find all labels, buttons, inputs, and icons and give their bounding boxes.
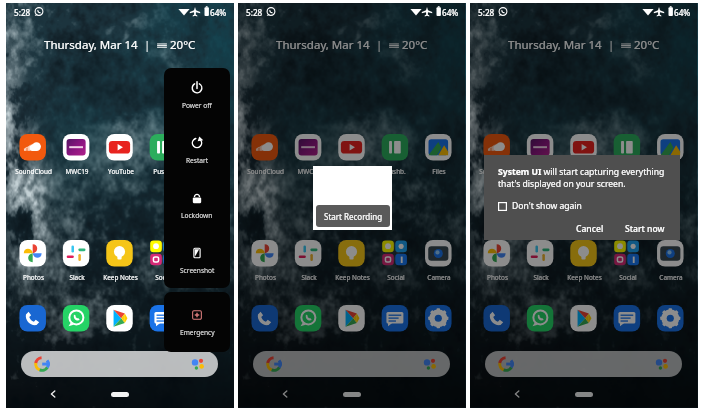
- staticText: Social: [155, 273, 173, 282]
- staticText: |: [138, 37, 157, 53]
- staticText: Photos: [255, 273, 276, 282]
- button[interactable]: Emergency: [164, 292, 230, 352]
- staticText: MWC19: [529, 167, 553, 176]
- staticText: SoundCloud: [479, 167, 516, 176]
- staticText: 5:28: [246, 7, 263, 18]
- staticText: System UI will start capturing everythin…: [498, 166, 670, 189]
- staticText: Start now: [625, 223, 665, 235]
- staticText: Social: [387, 273, 405, 282]
- staticText: Keep Notes: [103, 273, 138, 282]
- staticText: YouTube: [572, 167, 598, 176]
- staticText: 20°C: [167, 37, 196, 53]
- staticText: Files: [432, 167, 446, 176]
- staticText: Screenshot: [180, 266, 215, 275]
- staticText: Photos: [487, 273, 508, 282]
- button[interactable]: Restart: [164, 123, 230, 178]
- staticText: |: [370, 37, 389, 53]
- staticText: 64%: [210, 7, 227, 18]
- staticText: 64%: [442, 7, 459, 18]
- staticText: 5:28: [478, 7, 495, 18]
- staticText: 64%: [674, 7, 691, 18]
- staticText: Pushb.: [617, 167, 638, 176]
- staticText: Thursday, Mar 14: [508, 37, 602, 53]
- button[interactable]: Screenshot: [164, 233, 230, 288]
- staticText: MWC19: [297, 167, 321, 176]
- staticText: Camera: [659, 273, 683, 282]
- button[interactable]: Start Recording: [316, 205, 390, 227]
- staticText: Keep Notes: [567, 273, 602, 282]
- staticText: Lockdown: [181, 211, 213, 220]
- staticText: Restart: [186, 156, 209, 165]
- button[interactable]: Home: [343, 392, 361, 397]
- staticText: Pushb.: [153, 167, 174, 176]
- staticText: YouTube: [108, 167, 134, 176]
- staticText: Slack: [69, 273, 85, 282]
- staticText: Thursday, Mar 14: [44, 37, 138, 53]
- staticText: Pushb.: [385, 167, 406, 176]
- staticText: Thursday, Mar 14: [276, 37, 370, 53]
- button[interactable]: Power off: [164, 68, 230, 123]
- staticText: Keep Notes: [335, 273, 370, 282]
- button[interactable]: Cancel: [571, 221, 609, 237]
- staticText: 5:28: [14, 7, 31, 18]
- staticText: Camera: [427, 273, 451, 282]
- staticText: Photos: [23, 273, 44, 282]
- button[interactable]: Don't show again: [498, 200, 582, 212]
- staticText: Social: [619, 273, 637, 282]
- button[interactable]: [21, 351, 218, 377]
- button[interactable]: Home: [111, 392, 129, 397]
- staticText: SoundCloud: [247, 167, 284, 176]
- staticText: MWC19: [65, 167, 89, 176]
- staticText: Power off: [182, 101, 212, 110]
- staticText: Slack: [533, 273, 549, 282]
- button[interactable]: Back: [280, 389, 290, 399]
- staticText: Cancel: [576, 223, 604, 235]
- staticText: Slack: [301, 273, 317, 282]
- staticText: 20°C: [399, 37, 428, 53]
- button[interactable]: Home: [575, 392, 593, 397]
- button[interactable]: Back: [48, 389, 58, 399]
- staticText: 20°C: [631, 37, 660, 53]
- staticText: |: [602, 37, 621, 53]
- button[interactable]: [485, 351, 682, 377]
- button[interactable]: Lockdown: [164, 178, 230, 233]
- button[interactable]: Back: [512, 389, 522, 399]
- staticText: Emergency: [180, 328, 215, 337]
- button[interactable]: Start now: [620, 221, 670, 237]
- staticText: SoundCloud: [15, 167, 52, 176]
- staticText: Don't show again: [512, 200, 582, 212]
- button[interactable]: [253, 351, 450, 377]
- staticText: Start Recording: [324, 211, 383, 222]
